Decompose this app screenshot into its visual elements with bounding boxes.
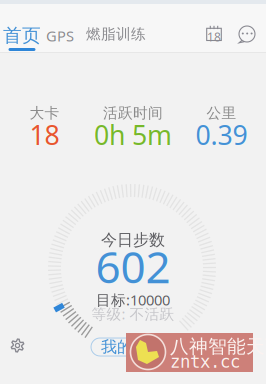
button[interactable]: GPS	[42, 0, 78, 52]
button[interactable]: Messages	[231, 0, 263, 52]
staticText: zntx.cc	[170, 352, 240, 372]
staticText: 八神智能天下	[170, 335, 266, 358]
staticText: 首页	[3, 24, 41, 47]
staticText: 等级: 不活跃	[91, 304, 174, 323]
staticText: 0.39	[195, 117, 247, 152]
staticText: 今日步数	[101, 230, 165, 250]
button[interactable]: Settings	[5, 333, 30, 358]
staticText: 公里	[206, 104, 236, 122]
staticText: 燃脂训练	[86, 25, 146, 43]
staticText: 602	[95, 237, 170, 295]
staticText: 0h 5m	[94, 117, 172, 152]
staticText: 活跃时间	[103, 104, 163, 122]
staticText: 18	[29, 117, 59, 152]
button[interactable]: Calendar	[198, 0, 230, 52]
staticText: 目标:10000	[96, 290, 170, 309]
staticText: 18	[207, 29, 221, 45]
button[interactable]: 我的目标	[91, 338, 175, 356]
staticText: 大卡	[29, 104, 59, 122]
button[interactable]: 燃脂训练	[80, 0, 152, 52]
staticText: 我的目标	[101, 337, 165, 357]
button[interactable]: 首页	[0, 0, 44, 52]
staticText: GPS	[46, 26, 74, 45]
